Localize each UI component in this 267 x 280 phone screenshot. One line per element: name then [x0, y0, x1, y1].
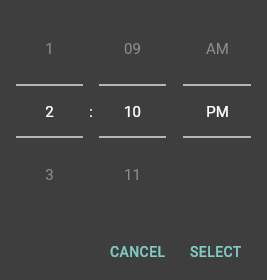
- staticText: PM: [206, 103, 229, 121]
- button[interactable]: meridiem PM: [183, 101, 251, 123]
- staticText: :: [89, 103, 93, 121]
- button[interactable]: Previous minute 09: [99, 38, 166, 60]
- staticText: 10: [124, 103, 141, 121]
- button[interactable]: hour 2: [16, 101, 83, 123]
- staticText: AM: [206, 40, 229, 58]
- staticText: 09: [124, 40, 141, 58]
- staticText: SELECT: [190, 244, 242, 260]
- button[interactable]: CANCEL: [102, 238, 174, 266]
- button[interactable]: Previous hour 1: [16, 38, 83, 60]
- button[interactable]: Next hour 3: [16, 164, 83, 186]
- staticText: 11: [124, 166, 141, 184]
- button[interactable]: Previous meridiem AM: [183, 38, 251, 60]
- button[interactable]: Next minute 11: [99, 164, 166, 186]
- staticText: 3: [45, 166, 54, 184]
- staticText: CANCEL: [110, 244, 166, 260]
- staticText: 2: [45, 103, 54, 121]
- staticText: 1: [45, 40, 54, 58]
- button[interactable]: SELECT: [182, 238, 250, 266]
- button[interactable]: minute 10: [99, 101, 166, 123]
